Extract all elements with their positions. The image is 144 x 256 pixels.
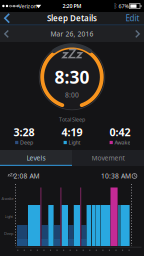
- staticText: Sleep Details: [47, 13, 97, 23]
- staticText: Verizon: [18, 3, 36, 10]
- button[interactable]: Next day: [0, 0, 144, 256]
- staticText: Mar 26, 2016: [50, 30, 93, 38]
- staticText: Deep: [4, 231, 13, 236]
- staticText: 0:42: [109, 125, 130, 139]
- staticText: Light: [4, 214, 12, 219]
- staticText: 8:30: [54, 65, 89, 88]
- staticText: Levels: [26, 154, 45, 162]
- staticText: Movement: [91, 154, 124, 162]
- staticText: Light: [68, 139, 80, 146]
- staticText: 3:28: [13, 125, 34, 139]
- button[interactable]: Levels: [0, 0, 144, 256]
- button[interactable]: Previous day: [0, 0, 144, 256]
- staticText: 8:00: [65, 91, 79, 99]
- staticText: ᛒ: [113, 3, 117, 9]
- staticText: Total Sleep: [59, 116, 85, 123]
- button[interactable]: Movement: [0, 0, 144, 256]
- staticText: 2:08 AM: [13, 172, 39, 180]
- button[interactable]: Back: [0, 0, 144, 256]
- button[interactable]: Edit: [0, 0, 144, 256]
- staticText: Awake: [114, 139, 130, 146]
- staticText: Deep: [20, 139, 33, 146]
- staticText: Awake: [1, 196, 13, 201]
- staticText: Edit: [125, 13, 139, 23]
- staticText: 2:20 PM: [62, 2, 81, 10]
- staticText: 67%: [118, 3, 128, 10]
- staticText: 4:19: [61, 125, 82, 139]
- staticText: 10:38 AM: [101, 172, 131, 180]
